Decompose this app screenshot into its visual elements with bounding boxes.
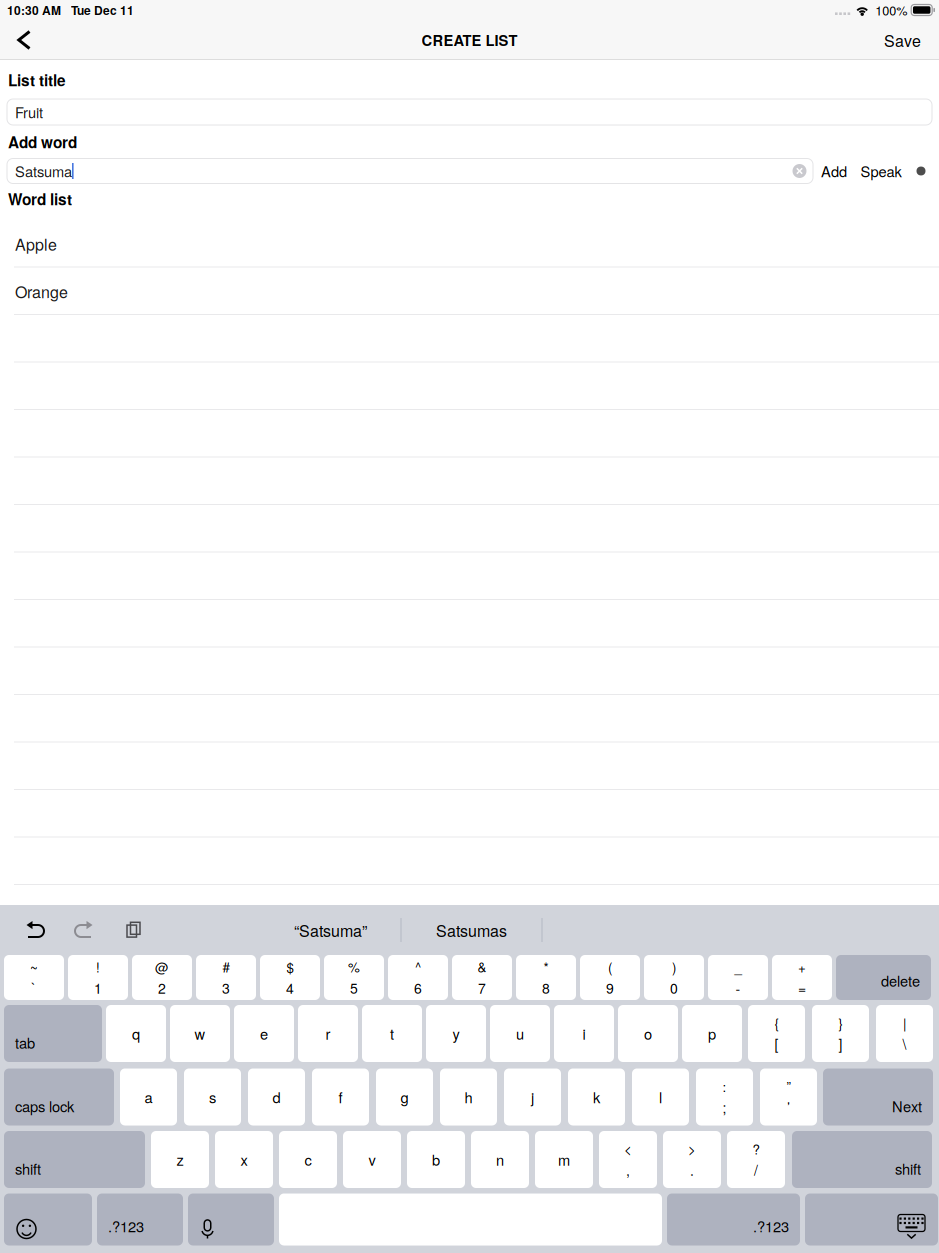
button[interactable]: Orange: [0, 267, 939, 315]
button[interactable]: :: [696, 1068, 753, 1125]
button[interactable]: #: [196, 955, 256, 1000]
button[interactable]: ): [644, 955, 704, 1000]
button[interactable]: tab: [4, 1005, 102, 1062]
staticText: ^: [415, 957, 421, 976]
button[interactable]: Dictate: [188, 1193, 274, 1245]
button[interactable]: e: [234, 1005, 294, 1062]
button[interactable]: d: [248, 1068, 305, 1125]
button[interactable]: [0, 362, 939, 410]
button[interactable]: r: [298, 1005, 358, 1062]
button[interactable]: w: [170, 1005, 230, 1062]
button[interactable]: a: [120, 1068, 177, 1125]
button[interactable]: +: [772, 955, 832, 1000]
staticText: e: [260, 1023, 268, 1044]
button[interactable]: Hide keyboard: [805, 1193, 938, 1245]
button[interactable]: !: [68, 955, 128, 1000]
button[interactable]: .?123: [97, 1193, 183, 1245]
button[interactable]: Emoji: [4, 1193, 92, 1245]
staticText: ~: [30, 957, 38, 976]
staticText: ’: [787, 1097, 790, 1117]
button[interactable]: ^: [388, 955, 448, 1000]
button[interactable]: }: [812, 1005, 869, 1062]
button[interactable]: Redo: [60, 908, 109, 952]
button[interactable]: l: [632, 1068, 689, 1125]
button[interactable]: ”: [760, 1068, 817, 1125]
staticText: Apple: [15, 232, 57, 255]
button[interactable]: shift: [792, 1131, 932, 1188]
staticText: +: [798, 957, 806, 976]
button[interactable]: $: [260, 955, 320, 1000]
button[interactable]: Satsumas: [401, 913, 541, 947]
button[interactable]: j: [504, 1068, 561, 1125]
button[interactable]: i: [554, 1005, 614, 1062]
button[interactable]: “Satsuma”: [260, 913, 400, 947]
button[interactable]: [0, 457, 939, 505]
staticText: 10:30 AM: [7, 1, 61, 19]
button[interactable]: [279, 1193, 662, 1245]
button[interactable]: ?: [727, 1131, 785, 1188]
button[interactable]: {: [748, 1005, 805, 1062]
button[interactable]: Paste: [109, 908, 158, 952]
button[interactable]: m: [535, 1131, 593, 1188]
staticText: ]: [838, 1034, 842, 1054]
button[interactable]: c: [279, 1131, 337, 1188]
button[interactable]: @: [132, 955, 192, 1000]
button[interactable]: [0, 837, 939, 885]
button[interactable]: f: [312, 1068, 369, 1125]
staticText: Satsumas: [436, 918, 507, 941]
button[interactable]: Save: [851, 20, 921, 60]
staticText: %: [348, 957, 360, 976]
button[interactable]: Speak: [855, 158, 907, 184]
button[interactable]: [0, 552, 939, 600]
button[interactable]: [0, 742, 939, 790]
button[interactable]: q: [106, 1005, 166, 1062]
button[interactable]: z: [151, 1131, 209, 1188]
button[interactable]: .?123: [667, 1193, 800, 1245]
staticText: >: [688, 1139, 696, 1158]
button[interactable]: n: [471, 1131, 529, 1188]
button[interactable]: &: [452, 955, 512, 1000]
button[interactable]: *: [516, 955, 576, 1000]
button[interactable]: y: [426, 1005, 486, 1062]
button[interactable]: Apple: [0, 220, 939, 267]
button[interactable]: b: [407, 1131, 465, 1188]
button[interactable]: Back: [2, 20, 46, 60]
button[interactable]: shift: [4, 1131, 145, 1188]
button[interactable]: u: [490, 1005, 550, 1062]
button[interactable]: ~: [4, 955, 64, 1000]
staticText: 6: [414, 978, 422, 998]
button[interactable]: Recording indicator: [907, 158, 935, 184]
button[interactable]: o: [618, 1005, 678, 1062]
button[interactable]: t: [362, 1005, 422, 1062]
button[interactable]: s: [184, 1068, 241, 1125]
button[interactable]: |: [876, 1005, 933, 1062]
button[interactable]: Next: [823, 1068, 933, 1125]
button[interactable]: p: [682, 1005, 742, 1062]
button[interactable]: (: [580, 955, 640, 1000]
staticText: :: [722, 1077, 726, 1096]
staticText: \: [902, 1034, 906, 1054]
button[interactable]: v: [343, 1131, 401, 1188]
staticText: /: [754, 1160, 758, 1180]
button[interactable]: x: [215, 1131, 273, 1188]
button[interactable]: delete: [836, 955, 931, 1000]
button[interactable]: >: [663, 1131, 721, 1188]
button[interactable]: g: [376, 1068, 433, 1125]
button[interactable]: Clear text: [786, 159, 813, 183]
button[interactable]: Add: [813, 158, 855, 184]
button[interactable]: h: [440, 1068, 497, 1125]
button[interactable]: caps lock: [4, 1068, 114, 1125]
button[interactable]: _: [708, 955, 768, 1000]
button[interactable]: <: [599, 1131, 657, 1188]
button[interactable]: k: [568, 1068, 625, 1125]
staticText: =: [798, 978, 806, 998]
button[interactable]: [0, 647, 939, 695]
button[interactable]: %: [324, 955, 384, 1000]
button[interactable]: Undo: [11, 908, 60, 952]
